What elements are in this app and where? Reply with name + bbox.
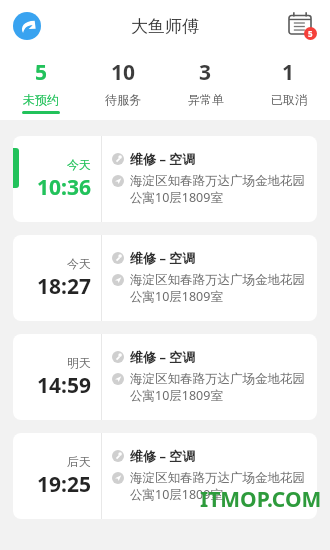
staticText: 海淀区知春路万达广场金地花园 <box>130 470 305 486</box>
staticText: 14:59 <box>37 371 91 400</box>
staticText: 维修 – 空调 <box>130 348 196 366</box>
button[interactable]: 1 <box>247 52 330 111</box>
staticText: 今天 <box>67 157 91 172</box>
staticText: 今天 <box>67 256 91 271</box>
button[interactable]: 明天 <box>13 334 317 420</box>
staticText: 海淀区知春路万达广场金地花园 <box>130 272 305 288</box>
staticText: 公寓10层1809室 <box>130 387 223 404</box>
button[interactable]: Logo <box>12 11 42 41</box>
button[interactable]: 今天 <box>13 136 317 222</box>
button[interactable]: 今天 <box>13 235 317 321</box>
staticText: 5 <box>308 28 313 39</box>
staticText: 维修 – 空调 <box>130 447 196 465</box>
button[interactable]: 5 <box>0 52 82 114</box>
staticText: 公寓10层1809室 <box>130 189 223 206</box>
staticText: 18:27 <box>37 272 91 301</box>
staticText: 异常单 <box>188 92 224 107</box>
staticText: 公寓10层1809室 <box>130 288 223 305</box>
staticText: 后天 <box>67 454 91 469</box>
staticText: 已取消 <box>271 92 307 107</box>
staticText: 维修 – 空调 <box>130 150 196 168</box>
staticText: 3 <box>199 58 212 87</box>
button[interactable]: 后天 <box>13 433 317 519</box>
staticText: ITMOP.COM <box>200 485 322 514</box>
staticText: 公寓10层1809室 <box>130 486 223 503</box>
staticText: 未预约 <box>23 92 59 107</box>
button[interactable]: 10 <box>82 52 164 111</box>
staticText: 10 <box>111 58 136 87</box>
staticText: 5 <box>35 58 48 87</box>
staticText: 维修 – 空调 <box>130 249 196 267</box>
staticText: 待服务 <box>105 92 141 107</box>
staticText: 10:36 <box>37 173 91 202</box>
staticText: 明天 <box>67 355 91 370</box>
button[interactable]: 3 <box>164 52 247 111</box>
staticText: 海淀区知春路万达广场金地花园 <box>130 371 305 387</box>
staticText: 海淀区知春路万达广场金地花园 <box>130 173 305 189</box>
staticText: 1 <box>282 58 295 87</box>
staticText: 19:25 <box>37 470 91 499</box>
button[interactable]: Orders <box>288 11 318 41</box>
staticText: 大鱼师傅 <box>131 16 199 37</box>
